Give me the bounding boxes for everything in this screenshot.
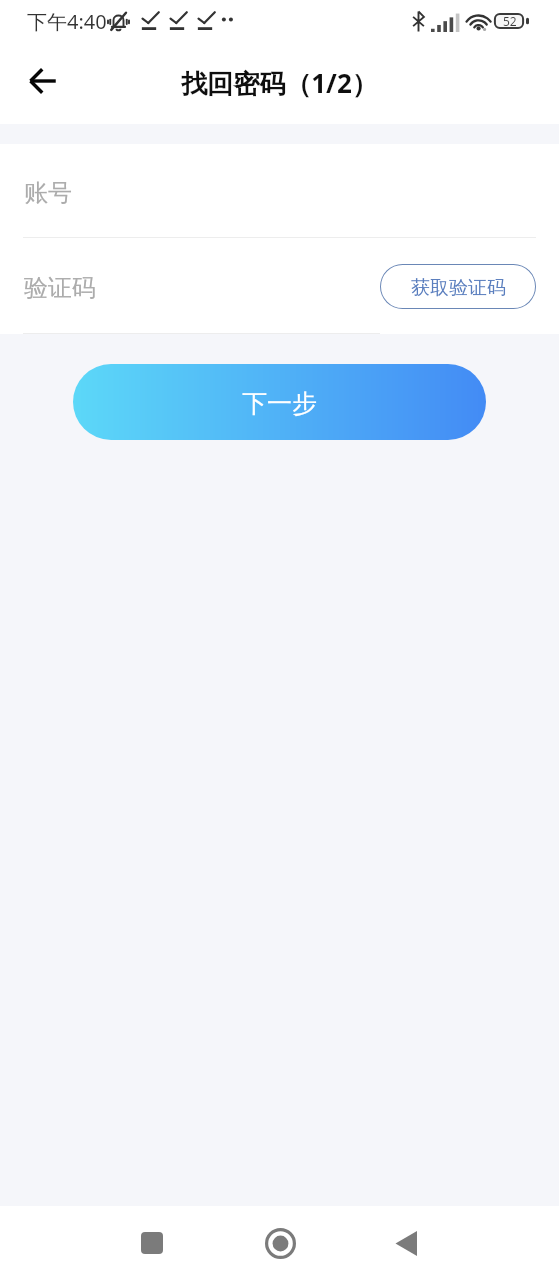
staticText: 52 [503, 13, 517, 29]
button[interactable]: 验证码 [0, 238, 370, 334]
staticText: 下午4:40 [27, 8, 107, 35]
button[interactable]: Back [376, 1213, 436, 1273]
staticText: 账号 [24, 178, 72, 208]
button[interactable]: 下一步 [73, 364, 486, 440]
staticText: 找回密码（1/2） [181, 65, 378, 101]
button[interactable]: Recent apps [122, 1213, 182, 1273]
button[interactable]: 获取验证码 [380, 264, 536, 309]
staticText: 获取验证码 [411, 276, 506, 300]
staticText: 下一步 [242, 388, 317, 419]
staticText: 验证码 [24, 273, 96, 303]
button[interactable]: Home [250, 1213, 310, 1273]
button[interactable]: 账号 [0, 144, 559, 238]
button[interactable]: Back [19, 57, 67, 105]
